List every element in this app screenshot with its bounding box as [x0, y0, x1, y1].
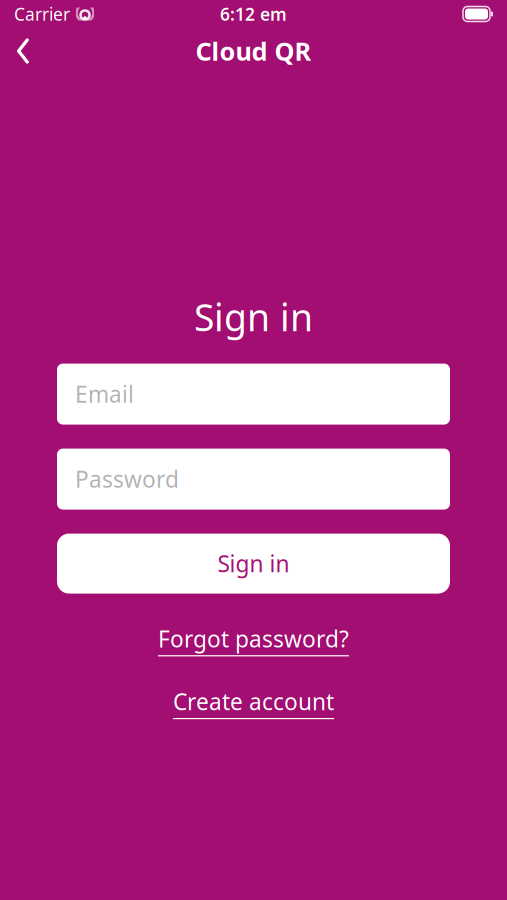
button[interactable]: Sign in — [57, 534, 450, 594]
button[interactable]: Back — [0, 30, 46, 72]
button[interactable]: Email — [57, 364, 450, 425]
button[interactable]: Forgot password? — [142, 616, 365, 664]
staticText: Forgot password? — [158, 624, 349, 654]
staticText: Carrier — [14, 2, 70, 25]
button[interactable]: Password — [57, 449, 450, 510]
staticText: Sign in — [194, 292, 313, 342]
staticText: Password — [75, 464, 179, 494]
staticText: Email — [75, 379, 134, 409]
staticText: Create account — [173, 686, 334, 716]
staticText: 6:12 em — [220, 2, 287, 25]
staticText: Cloud QR — [195, 34, 311, 68]
staticText: Sign in — [217, 548, 289, 579]
button[interactable]: Create account — [157, 678, 350, 727]
